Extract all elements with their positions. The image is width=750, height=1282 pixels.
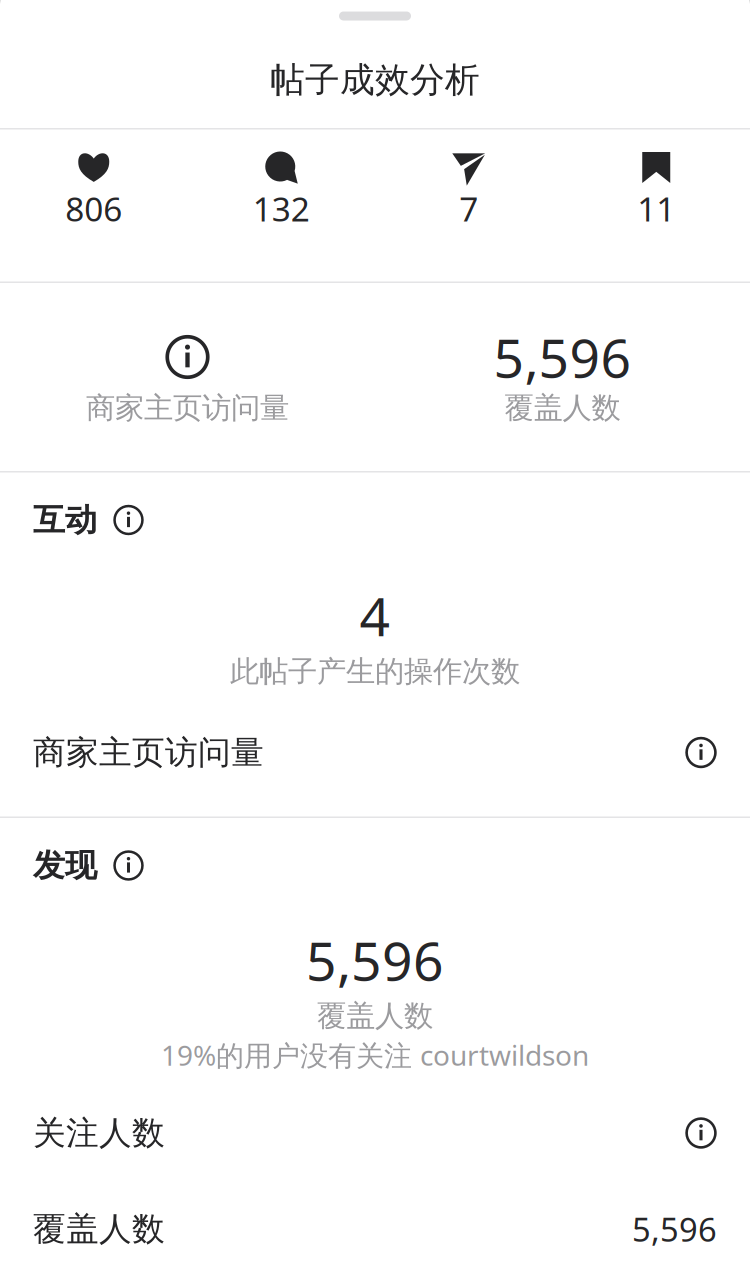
staticText: 4 [359,579,390,652]
button[interactable]: 赞 [0,147,187,229]
staticText: 覆盖人数 [317,997,433,1034]
staticText: 覆盖人数 [33,1208,165,1250]
staticText: 806 [65,186,122,231]
button[interactable]: 互动说明 [97,504,152,535]
staticText: 商家主页访问量 [33,732,264,773]
staticText: 19%的用户没有关注 courtwildson [161,1036,589,1074]
staticText: 11 [637,186,675,231]
button[interactable]: 覆盖人数 [0,1196,750,1262]
staticText: 此帖子产生的操作次数 [230,653,520,690]
button[interactable]: 分享 [375,147,562,229]
button[interactable]: 收藏 [562,147,750,229]
button[interactable]: 关注人数 [0,1100,750,1166]
button[interactable]: 5,596 [375,328,750,430]
staticText: 发现 [33,845,97,886]
staticText: 5,596 [306,924,444,996]
staticText: 覆盖人数 [504,389,620,426]
staticText: 132 [253,186,310,231]
staticText: 7 [459,186,478,231]
staticText: 关注人数 [33,1112,165,1154]
staticText: 帖子成效分析 [270,58,480,102]
staticText: 5,596 [493,321,631,393]
button[interactable]: 商家主页访问量 [0,719,750,785]
staticText: 互动 [33,500,97,540]
button[interactable]: 发现说明 [97,850,152,881]
staticText: 商家主页访问量 [86,389,289,426]
button[interactable]: 评论 [187,147,375,229]
button[interactable]: 商家主页访问量 [0,328,375,430]
staticText: 5,596 [632,1207,717,1251]
